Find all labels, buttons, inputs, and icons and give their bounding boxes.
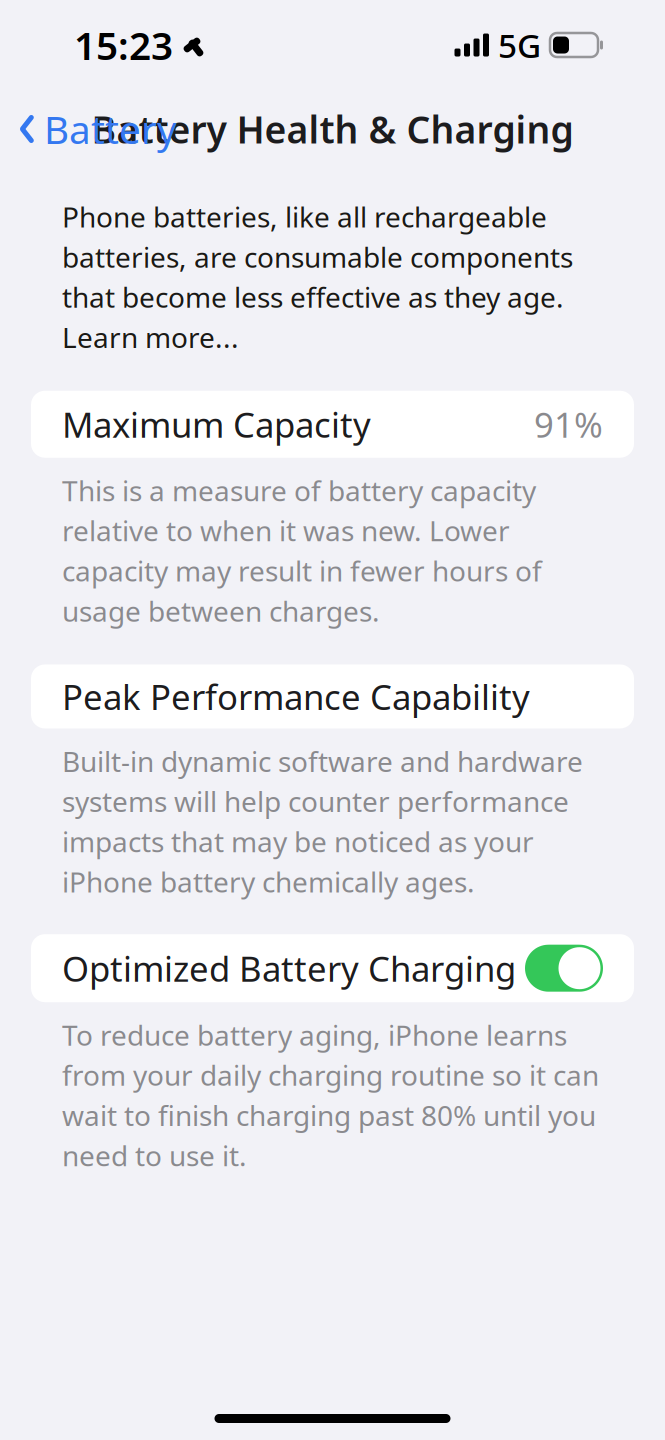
staticText: Optimized Battery Charging: [62, 945, 516, 991]
staticText: Battery: [44, 103, 177, 155]
staticText: Built-in dynamic software and hardware s…: [62, 742, 583, 900]
staticText: This is a measure of battery capacity re…: [62, 472, 542, 629]
staticText: 15:23: [74, 19, 173, 71]
staticText: To reduce battery aging, iPhone learns f…: [62, 1016, 599, 1174]
button[interactable]: Peak Performance Capability: [0, 664, 665, 728]
staticText: 5G: [498, 23, 541, 67]
staticText: Maximum Capacity: [62, 401, 371, 447]
button[interactable]: Optimized Battery Charging: [0, 934, 665, 1002]
staticText: Battery Health & Charging: [91, 104, 573, 154]
staticText: 91%: [534, 401, 603, 447]
staticText: Phone batteries, like all rechargeable b…: [62, 198, 573, 356]
button[interactable]: Battery: [0, 95, 177, 163]
button[interactable]: Maximum Capacity: [0, 391, 665, 458]
staticText: Peak Performance Capability: [62, 673, 530, 719]
